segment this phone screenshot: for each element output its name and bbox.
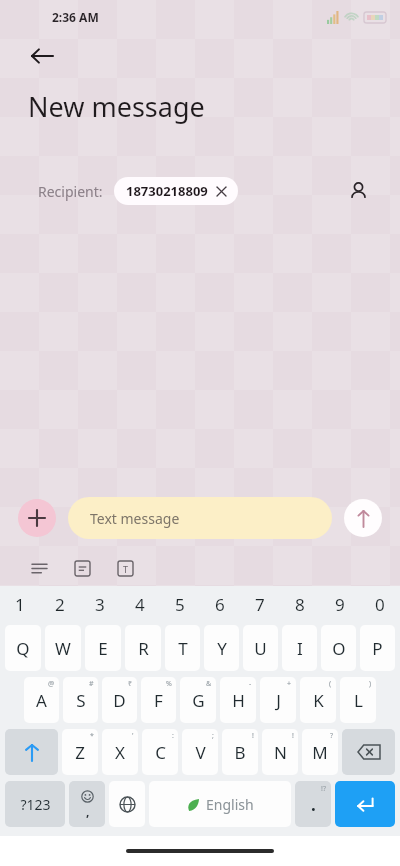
staticText: E [98, 637, 108, 660]
button[interactable]: & [180, 677, 216, 723]
button[interactable]: ?123 [5, 781, 65, 827]
staticText: R [138, 637, 149, 660]
button[interactable]: + [260, 677, 296, 723]
button[interactable]: @ [24, 677, 59, 723]
button[interactable]: ! [262, 729, 298, 775]
button[interactable]: : [142, 729, 178, 775]
button[interactable]: Emoji [69, 781, 105, 827]
staticText: U [254, 637, 267, 660]
staticText: 0 [375, 593, 385, 616]
button[interactable]: ₹ [102, 677, 137, 723]
button[interactable]: I [282, 625, 317, 671]
staticText: 2 [55, 593, 65, 616]
button[interactable]: English [149, 781, 291, 827]
button[interactable]: 9 [320, 586, 360, 622]
button[interactable]: # [63, 677, 98, 723]
staticText: S [76, 689, 86, 712]
button[interactable]: 6 [200, 586, 240, 622]
button[interactable]: 8 [280, 586, 320, 622]
button[interactable]: Send [344, 499, 382, 537]
button[interactable]: Enter [335, 781, 395, 827]
staticText: I [297, 637, 303, 660]
staticText: 4 [135, 593, 145, 616]
staticText: D [113, 689, 126, 712]
staticText: # [89, 679, 94, 689]
button[interactable]: Menu [22, 551, 56, 585]
staticText: ) [369, 679, 372, 689]
staticText: 3 [95, 593, 105, 616]
staticText: Z [75, 741, 85, 764]
button[interactable]: Add attachment [18, 499, 56, 537]
staticText: V [195, 741, 206, 764]
staticText: Recipient: [38, 182, 103, 201]
button[interactable]: ( [300, 677, 336, 723]
button[interactable]: R [125, 625, 161, 671]
staticText: ! [292, 731, 294, 741]
button[interactable]: Period [295, 781, 331, 827]
staticText: ' [132, 731, 134, 741]
staticText: K [313, 689, 324, 712]
staticText: M [312, 741, 328, 764]
button[interactable]: Q [5, 625, 41, 671]
button[interactable]: 7 [240, 586, 280, 622]
staticText: - [249, 679, 252, 689]
button[interactable]: 18730218809 [114, 177, 238, 205]
button[interactable]: 5 [160, 586, 200, 622]
button[interactable]: Y [204, 625, 239, 671]
staticText: ?123 [20, 795, 51, 814]
staticText: L [354, 689, 363, 712]
staticText: T [178, 637, 188, 660]
staticText: & [206, 679, 212, 689]
button[interactable]: E [85, 625, 121, 671]
staticText: ₹ [128, 679, 133, 689]
button[interactable]: 2 [40, 586, 80, 622]
staticText: T [123, 563, 129, 575]
staticText: Text message [90, 509, 180, 528]
button[interactable]: Text style [108, 551, 142, 585]
staticText: !? [321, 784, 326, 794]
staticText: Y [217, 637, 227, 660]
staticText: 6 [215, 593, 225, 616]
button[interactable]: Contacts [338, 171, 378, 211]
staticText: P [372, 637, 383, 660]
button[interactable]: Change language [109, 781, 145, 827]
button[interactable]: ) [340, 677, 376, 723]
button[interactable]: 4 [120, 586, 160, 622]
button[interactable]: % [141, 677, 176, 723]
staticText: , [86, 803, 90, 819]
button[interactable]: Text message [68, 497, 332, 539]
staticText: ; [212, 731, 214, 741]
button[interactable]: Format list [65, 551, 99, 585]
staticText: O [332, 637, 346, 660]
button[interactable]: O [321, 625, 356, 671]
staticText: G [192, 689, 205, 712]
button[interactable]: ' [102, 729, 138, 775]
staticText: J [276, 689, 281, 712]
staticText: * [90, 731, 94, 741]
staticText: F [154, 689, 163, 712]
staticText: English [206, 795, 254, 814]
button[interactable]: ; [182, 729, 218, 775]
button[interactable]: ! [222, 729, 258, 775]
button[interactable]: U [243, 625, 278, 671]
staticText: 8 [295, 593, 305, 616]
button[interactable]: Backspace [342, 729, 395, 775]
staticText: X [115, 741, 125, 764]
button[interactable]: 1 [0, 586, 40, 622]
button[interactable]: 0 [360, 586, 400, 622]
button[interactable]: T [165, 625, 200, 671]
staticText: + [287, 679, 292, 689]
button[interactable]: W [45, 625, 81, 671]
staticText: 2:36 AM [52, 9, 99, 25]
staticText: @ [48, 679, 55, 689]
staticText: B [234, 741, 246, 764]
button[interactable]: - [220, 677, 256, 723]
button[interactable]: ? [302, 729, 338, 775]
button[interactable]: Shift [5, 729, 58, 775]
button[interactable]: P [360, 625, 395, 671]
button[interactable]: 3 [80, 586, 120, 622]
button[interactable]: * [62, 729, 98, 775]
button[interactable]: Back [20, 34, 64, 78]
staticText: 9 [335, 593, 345, 616]
staticText: A [36, 689, 47, 712]
